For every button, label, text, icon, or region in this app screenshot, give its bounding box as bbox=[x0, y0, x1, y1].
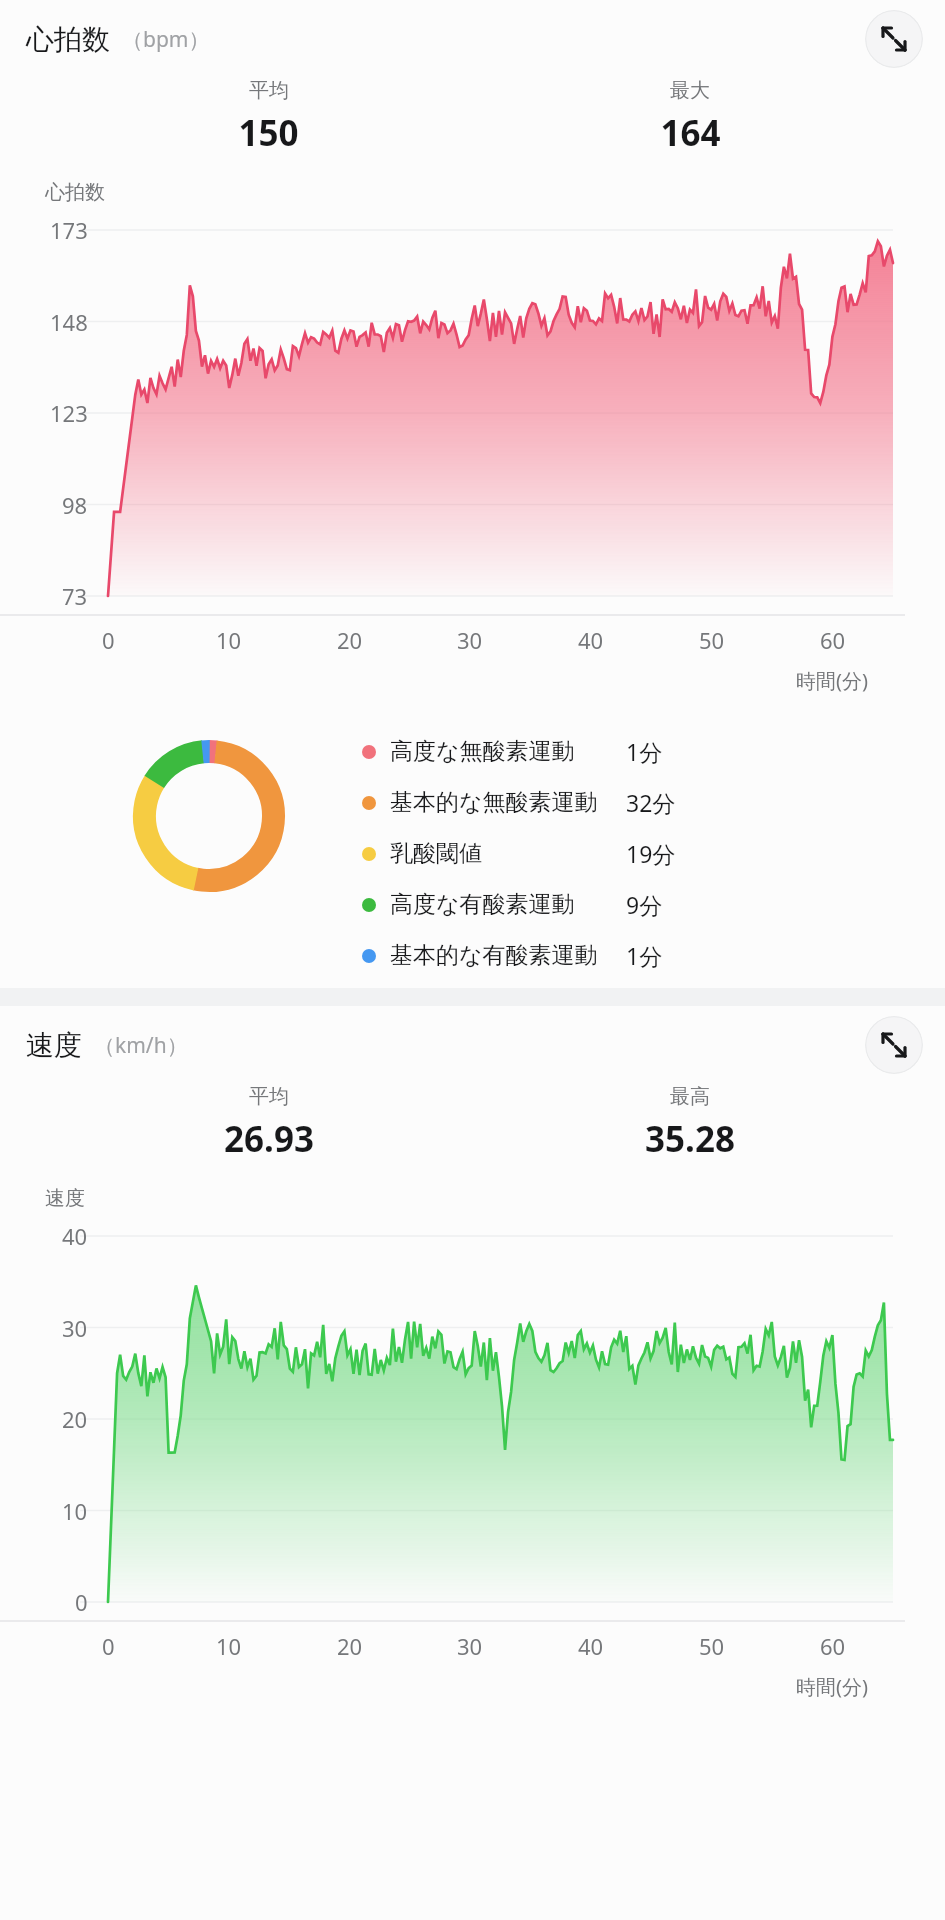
staticText: 1分 bbox=[626, 940, 663, 971]
staticText: 10 bbox=[62, 1496, 88, 1526]
staticText: 10 bbox=[216, 1631, 242, 1661]
staticText: （bpm） bbox=[122, 25, 210, 54]
staticText: 時間(分) bbox=[796, 1673, 868, 1700]
staticText: 心拍数 bbox=[26, 22, 110, 57]
staticText: 60 bbox=[820, 625, 846, 655]
staticText: 心拍数 bbox=[45, 180, 105, 205]
staticText: 高度な有酸素運動 bbox=[390, 890, 575, 919]
staticText: 173 bbox=[50, 215, 88, 245]
staticText: 30 bbox=[457, 1631, 483, 1661]
staticText: 148 bbox=[50, 307, 88, 337]
staticText: 30 bbox=[457, 625, 483, 655]
staticText: 32分 bbox=[626, 787, 676, 818]
staticText: 40 bbox=[578, 625, 604, 655]
staticText: 0 bbox=[102, 1631, 115, 1661]
staticText: 速度 bbox=[26, 1028, 82, 1063]
staticText: 20 bbox=[62, 1404, 88, 1434]
staticText: （km/h） bbox=[94, 1031, 188, 1060]
staticText: 平均 bbox=[249, 1084, 289, 1109]
staticText: 26.93 bbox=[224, 1115, 314, 1163]
staticText: 最高 bbox=[670, 1084, 710, 1109]
staticText: 乳酸閾値 bbox=[390, 839, 482, 868]
staticText: 高度な無酸素運動 bbox=[390, 737, 575, 766]
staticText: 平均 bbox=[249, 78, 289, 103]
staticText: 0 bbox=[75, 1587, 88, 1617]
staticText: 60 bbox=[820, 1631, 846, 1661]
staticText: 150 bbox=[238, 109, 299, 157]
staticText: 19分 bbox=[626, 838, 676, 869]
button[interactable]: 基本的な有酸素運動 bbox=[362, 930, 945, 981]
staticText: 30 bbox=[62, 1313, 88, 1343]
staticText: 9分 bbox=[626, 889, 663, 920]
staticText: 20 bbox=[337, 1631, 363, 1661]
staticText: 164 bbox=[660, 109, 721, 157]
button[interactable]: 基本的な無酸素運動 bbox=[362, 777, 945, 828]
button[interactable]: 高度な有酸素運動 bbox=[362, 879, 945, 930]
staticText: 40 bbox=[578, 1631, 604, 1661]
staticText: 20 bbox=[337, 625, 363, 655]
staticText: 50 bbox=[699, 625, 725, 655]
button[interactable]: 心拍数グラフを拡大 bbox=[865, 10, 923, 68]
staticText: 50 bbox=[699, 1631, 725, 1661]
button[interactable]: 乳酸閾値 bbox=[362, 828, 945, 879]
staticText: 基本的な有酸素運動 bbox=[390, 941, 598, 970]
button[interactable]: 速度グラフを拡大 bbox=[865, 1016, 923, 1074]
staticText: 35.28 bbox=[645, 1115, 735, 1163]
staticText: 時間(分) bbox=[796, 667, 868, 694]
staticText: 0 bbox=[102, 625, 115, 655]
button[interactable]: 高度な無酸素運動 bbox=[362, 726, 945, 777]
staticText: 10 bbox=[216, 625, 242, 655]
staticText: 40 bbox=[62, 1221, 88, 1251]
staticText: 速度 bbox=[45, 1186, 85, 1211]
staticText: 最大 bbox=[670, 78, 710, 103]
staticText: 73 bbox=[62, 581, 88, 611]
staticText: 123 bbox=[50, 398, 88, 428]
staticText: 98 bbox=[62, 490, 88, 520]
staticText: 1分 bbox=[626, 736, 663, 767]
staticText: 基本的な無酸素運動 bbox=[390, 788, 598, 817]
